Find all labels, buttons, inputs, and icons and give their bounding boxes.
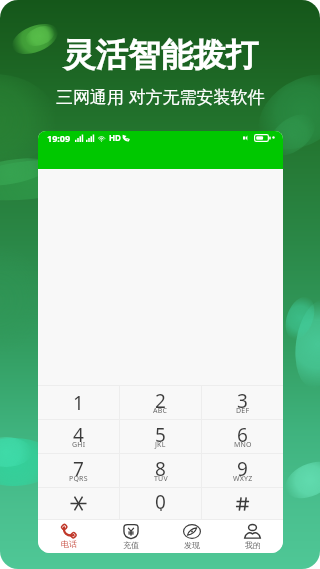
button[interactable]: 0 (120, 488, 201, 519)
staticText: DEF (236, 406, 250, 416)
staticText: 7 (73, 456, 84, 482)
staticText: 5 (155, 422, 166, 448)
staticText: 19:09 (47, 132, 71, 144)
staticText: 2 (155, 388, 166, 414)
staticText: 充值 (123, 540, 139, 550)
button[interactable]: 4 (38, 420, 119, 453)
staticText: 8 (155, 456, 166, 482)
staticText: 我的 (245, 540, 261, 550)
staticText: 3 (237, 388, 248, 414)
staticText: 三网通用 对方无需安装软件 (56, 85, 265, 108)
staticText: 0 (155, 489, 166, 515)
staticText: 6 (237, 422, 248, 448)
button[interactable]: Recharge (100, 520, 161, 553)
staticText: GHI (72, 440, 86, 450)
staticText: 1 (73, 390, 84, 416)
staticText: PQRS (69, 474, 88, 484)
staticText: 电话 (61, 539, 77, 549)
staticText: HD (109, 132, 121, 143)
button[interactable]: 5 (120, 420, 201, 453)
staticText: TUV (154, 474, 168, 484)
staticText: 发现 (184, 540, 200, 550)
staticText: WXYZ (233, 474, 253, 484)
staticText: 灵活智能拨打 (63, 35, 258, 76)
staticText: 4 (73, 422, 84, 448)
staticText: MNO (234, 440, 252, 450)
button[interactable]: 6 (202, 420, 283, 453)
button[interactable]: 2 (120, 386, 201, 419)
button[interactable] (202, 488, 283, 519)
button[interactable]: 8 (120, 454, 201, 487)
button[interactable]: Profile (222, 520, 283, 553)
button[interactable]: Phone (38, 520, 100, 553)
button[interactable] (38, 488, 119, 519)
button[interactable]: 1 (38, 386, 119, 419)
button[interactable]: 9 (202, 454, 283, 487)
button[interactable]: Discover (161, 520, 222, 553)
button[interactable]: 7 (38, 454, 119, 487)
staticText: ABC (153, 406, 168, 416)
staticText: JKL (155, 440, 166, 450)
staticText: 9 (237, 456, 248, 482)
button[interactable]: 3 (202, 386, 283, 419)
